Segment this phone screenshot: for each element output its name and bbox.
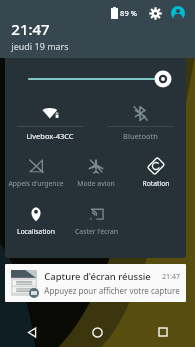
button[interactable]: Utilisateur <box>169 4 187 22</box>
button[interactable]: Localisation <box>5 200 66 250</box>
button[interactable]: Capture d'écran réussie <box>5 264 186 302</box>
button[interactable]: Bluetooth <box>95 100 186 152</box>
staticText: Bluetooth <box>123 131 158 141</box>
button[interactable]: Retour <box>0 317 65 347</box>
button[interactable]: Applications récentes <box>130 317 195 347</box>
staticText: Caster l'écran <box>75 227 118 236</box>
button[interactable]: Accueil <box>65 317 130 347</box>
staticText: Appuyez pour afficher votre capture d'éc… <box>44 285 180 296</box>
staticText: Rotation automatique <box>126 179 186 188</box>
staticText: 89 % <box>120 8 137 18</box>
button[interactable]: Caster l'écran <box>66 200 126 250</box>
staticText: Appels d'urgence <box>8 179 64 188</box>
button[interactable]: 21:47 <box>11 19 69 52</box>
button[interactable]: Livebox-43CC <box>5 100 95 152</box>
button[interactable]: Paramètres <box>146 4 164 22</box>
button[interactable]: Luminosité <box>5 58 186 100</box>
staticText: Capture d'écran réussie <box>44 270 151 283</box>
staticText: Mode avion <box>77 179 115 188</box>
staticText: Localisation <box>17 227 55 236</box>
staticText: 21:47 <box>11 19 50 39</box>
button[interactable]: Mode avion <box>66 152 126 200</box>
staticText: jeudi 19 mars <box>11 40 69 52</box>
button[interactable]: Appels d'urgence <box>5 152 66 200</box>
staticText: Livebox-43CC <box>26 131 74 141</box>
staticText: 21:47 <box>162 272 180 282</box>
button[interactable]: Rotation automatique <box>126 152 186 200</box>
